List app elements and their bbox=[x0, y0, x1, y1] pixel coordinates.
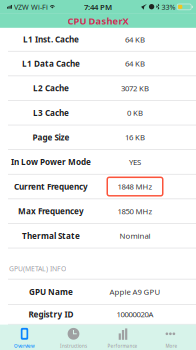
staticText: Apple A9 GPU bbox=[109, 286, 160, 297]
button[interactable]: Instructions bbox=[49, 325, 98, 350]
staticText: L2 Cache bbox=[33, 83, 69, 94]
staticText: 1850 MHz bbox=[117, 206, 152, 216]
button[interactable]: Performance bbox=[98, 325, 147, 350]
staticText: Overview bbox=[14, 343, 35, 349]
staticText: 10000020A bbox=[116, 309, 153, 320]
staticText: GPU Name bbox=[29, 286, 73, 297]
staticText: Page Size bbox=[32, 132, 69, 143]
staticText: Instructions bbox=[60, 343, 87, 349]
staticText: 33% bbox=[162, 2, 176, 12]
staticText: VZW Wi-Fi bbox=[14, 2, 48, 12]
staticText: Performance bbox=[107, 343, 137, 349]
staticText: 64 KB bbox=[125, 58, 145, 69]
staticText: L3 Cache bbox=[33, 107, 69, 118]
staticText: L1 Inst. Cache bbox=[23, 34, 79, 45]
staticText: 0 KB bbox=[127, 107, 143, 118]
staticText: More bbox=[165, 343, 177, 349]
staticText: Thermal State bbox=[22, 230, 80, 241]
staticText: Registry ID bbox=[28, 309, 73, 320]
staticText: 64 KB bbox=[125, 34, 145, 45]
staticText: YES bbox=[129, 157, 141, 167]
staticText: 1848 MHz bbox=[117, 181, 152, 192]
staticText: CPU DasherX bbox=[67, 14, 128, 27]
staticText: 7:44 PM bbox=[84, 2, 112, 12]
staticText: In Low Power Mode bbox=[11, 156, 91, 167]
staticText: 3072 KB bbox=[121, 83, 149, 93]
staticText: GPU(METAL) INFO bbox=[9, 264, 66, 273]
staticText: 16 KB bbox=[125, 132, 145, 143]
button[interactable]: More bbox=[147, 325, 196, 350]
staticText: Current Frequency bbox=[14, 181, 88, 192]
staticText: Max Frequencey bbox=[18, 206, 84, 217]
staticText: Nominal bbox=[119, 230, 150, 241]
staticText: L1 Data Cache bbox=[22, 58, 80, 69]
button[interactable]: Overview bbox=[0, 325, 49, 350]
